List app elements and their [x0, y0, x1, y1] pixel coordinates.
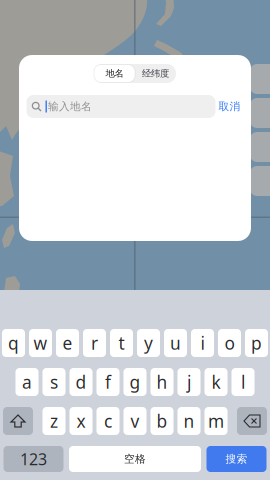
button[interactable]: s: [42, 368, 65, 396]
button[interactable]: 空格: [69, 446, 201, 472]
staticText: q: [8, 331, 19, 354]
staticText: y: [144, 331, 153, 354]
button[interactable]: r: [83, 329, 106, 357]
button[interactable]: c: [96, 407, 119, 435]
staticText: 123: [20, 448, 47, 470]
button[interactable]: w: [29, 329, 52, 357]
staticText: c: [104, 409, 112, 432]
button[interactable]: b: [150, 407, 173, 435]
staticText: 地名: [105, 68, 123, 79]
button[interactable]: p: [245, 329, 268, 357]
staticText: 搜索: [225, 452, 247, 465]
button[interactable]: 搜索: [206, 446, 266, 472]
staticText: z: [50, 409, 58, 432]
staticText: b: [156, 409, 167, 432]
staticText: 输入地名: [48, 100, 92, 113]
staticText: k: [211, 370, 220, 393]
button[interactable]: q: [2, 329, 25, 357]
staticText: f: [105, 370, 111, 393]
staticText: 取消: [218, 100, 240, 113]
button[interactable]: k: [204, 368, 227, 396]
button[interactable]: Delete: [237, 407, 267, 435]
button[interactable]: o: [218, 329, 241, 357]
button[interactable]: n: [177, 407, 200, 435]
staticText: v: [130, 409, 139, 432]
staticText: n: [183, 409, 194, 432]
button[interactable]: t: [110, 329, 133, 357]
button[interactable]: i: [191, 329, 214, 357]
button[interactable]: y: [137, 329, 160, 357]
button[interactable]: 取消: [215, 95, 243, 118]
button[interactable]: 123: [3, 446, 63, 472]
button[interactable]: Map control: [250, 132, 270, 162]
staticText: 空格: [124, 452, 146, 465]
staticText: j: [187, 370, 191, 393]
button[interactable]: v: [123, 407, 146, 435]
staticText: u: [170, 331, 181, 354]
staticText: i: [200, 331, 204, 354]
button[interactable]: j: [177, 368, 200, 396]
button[interactable]: e: [56, 329, 79, 357]
staticText: e: [62, 331, 72, 354]
staticText: m: [208, 409, 224, 432]
staticText: a: [22, 370, 32, 393]
button[interactable]: 经纬度: [135, 64, 176, 82]
staticText: r: [91, 331, 98, 354]
staticText: 经纬度: [142, 68, 169, 79]
button[interactable]: m: [204, 407, 227, 435]
button[interactable]: g: [123, 368, 146, 396]
button[interactable]: z: [42, 407, 65, 435]
staticText: x: [76, 409, 85, 432]
button[interactable]: h: [150, 368, 173, 396]
button[interactable]: a: [15, 368, 38, 396]
staticText: g: [129, 370, 140, 393]
button[interactable]: u: [164, 329, 187, 357]
button[interactable]: Map control: [250, 166, 270, 196]
button[interactable]: Map control: [250, 64, 270, 94]
staticText: s: [50, 370, 58, 393]
button[interactable]: Map control: [250, 98, 270, 128]
staticText: l: [241, 370, 245, 393]
staticText: d: [75, 370, 86, 393]
button[interactable]: l: [231, 368, 254, 396]
button[interactable]: d: [69, 368, 92, 396]
staticText: o: [224, 331, 234, 354]
staticText: w: [33, 331, 47, 354]
button[interactable]: 地名: [94, 64, 135, 82]
button[interactable]: x: [69, 407, 92, 435]
staticText: h: [156, 370, 167, 393]
staticText: p: [251, 331, 262, 354]
button[interactable]: f: [96, 368, 119, 396]
button[interactable]: Shift: [3, 407, 33, 435]
staticText: t: [118, 331, 124, 354]
